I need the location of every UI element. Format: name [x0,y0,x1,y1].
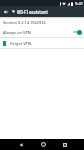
button[interactable]: Recent apps [60,139,70,150]
button[interactable]: Forget VPN [0,38,84,48]
button[interactable]: Back [16,139,26,150]
button[interactable]: Home [38,139,48,150]
staticText: Version 0.2.14.1562932 [3,20,46,25]
staticText: 9:41 [75,1,83,6]
button[interactable]: Navigate up [0,6,12,17]
staticText: Always-on VPN [3,30,73,35]
staticText: WI-FI assistant [17,9,48,15]
staticText: Forget VPN [10,41,31,46]
button[interactable]: Always-on VPN [0,27,84,37]
